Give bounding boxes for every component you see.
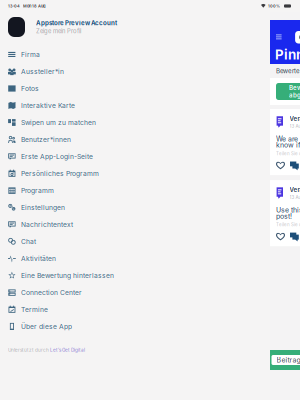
button[interactable]: Firma <box>0 46 270 63</box>
button[interactable]: Comment <box>290 232 299 241</box>
button[interactable]: Beitrag veröffentlichen <box>271 355 300 365</box>
staticText: Einstellungen <box>21 203 65 212</box>
staticText: Swipen um zu matchen <box>21 118 96 127</box>
button[interactable]: Benutzer*innen <box>0 131 270 148</box>
button[interactable]: Erste App-Login-Seite <box>0 148 270 165</box>
button[interactable]: Bewertung abgeben <box>276 83 300 100</box>
button[interactable]: Let's Get Digital <box>50 347 85 353</box>
button[interactable]: Like <box>276 232 285 241</box>
staticText: Interaktive Karte <box>21 101 75 110</box>
staticText: Aktivitäten <box>21 254 56 263</box>
button[interactable]: Chat <box>295 31 300 43</box>
staticText: Veranstalter <box>290 186 300 193</box>
staticText: Über diese App <box>21 322 72 331</box>
staticText: Let's Get Digital <box>50 347 85 353</box>
button[interactable]: Fotos <box>0 80 270 97</box>
staticText: 13 Aug 2025 <box>290 194 300 200</box>
button[interactable]: Connection Center <box>0 284 270 301</box>
button[interactable]: Menu <box>276 34 283 40</box>
staticText: Fotos <box>21 84 39 93</box>
staticText: Benutzer*innen <box>21 135 71 144</box>
button[interactable]: Aussteller*in <box>0 63 270 80</box>
staticText: 13 Aug 2025 <box>290 123 300 129</box>
staticText: Use this area for your <box>276 206 300 214</box>
staticText: Bewerten Sie diese App <box>276 67 300 75</box>
staticText: Veranstalter <box>290 115 300 122</box>
staticText: Pinnwand <box>275 46 300 63</box>
button[interactable]: Eine Bewertung hinterlassen <box>0 267 270 284</box>
staticText: Connection Center <box>21 288 82 297</box>
staticText: Eine Bewertung hinterlassen <box>21 271 114 280</box>
button[interactable]: Über diese App <box>0 318 270 335</box>
staticText: Teilen Sie dies mit Ihrem Netzwerk <box>276 151 300 156</box>
staticText: We are still busy setting <box>276 135 300 143</box>
staticText: Nachrichtentext <box>21 220 73 229</box>
button[interactable]: Nachrichtentext <box>0 216 270 233</box>
staticText: Appstore Preview Account <box>36 19 117 27</box>
button[interactable]: Chat <box>0 233 270 250</box>
staticText: Termine <box>21 305 48 314</box>
button[interactable]: Aktivitäten <box>0 250 270 267</box>
staticText: Firma <box>21 50 40 59</box>
staticText: Mon 18 Aug <box>23 4 46 8</box>
button[interactable]: Persönliches Programm <box>0 165 270 182</box>
staticText: Teilen Sie dies mit Ihrem Netzwerk <box>276 222 300 227</box>
staticText: Aussteller*in <box>21 67 64 76</box>
button[interactable]: Einstellungen <box>0 199 270 216</box>
staticText: 13:04 <box>8 4 20 8</box>
staticText: Persönliches Programm <box>21 169 99 178</box>
button[interactable]: Interaktive Karte <box>0 97 270 114</box>
staticText: Beitrag veröffentlichen <box>276 356 300 364</box>
staticText: Zeige mein Profil <box>36 28 81 35</box>
button[interactable]: Swipen um zu matchen <box>0 114 270 131</box>
staticText: Bewertung abgeben <box>289 84 300 99</box>
button[interactable]: Termine <box>0 301 270 318</box>
staticText: Erste App-Login-Seite <box>21 152 93 161</box>
staticText: 100% <box>268 4 280 8</box>
staticText: Chat <box>21 237 36 246</box>
staticText: Programm <box>21 186 54 195</box>
staticText: know if you have any <box>276 141 300 149</box>
button[interactable]: Programm <box>0 182 270 199</box>
staticText: Unterstützt durch <box>8 347 50 353</box>
button[interactable]: Appstore Preview Account <box>0 15 270 39</box>
button[interactable]: Comment <box>290 161 299 170</box>
button[interactable]: Like <box>276 161 285 170</box>
staticText: post! <box>276 212 292 220</box>
